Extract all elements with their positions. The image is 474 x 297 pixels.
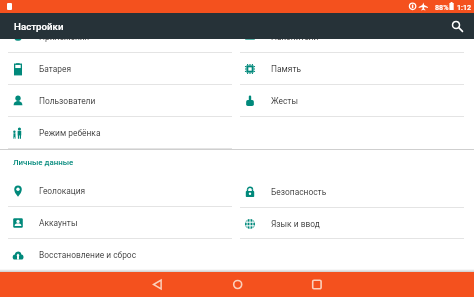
staticText: 88% xyxy=(435,3,449,11)
staticText: Язык и ввод xyxy=(271,219,320,229)
staticText: Безопасность xyxy=(271,187,327,197)
button[interactable]: Безопасность xyxy=(240,176,464,208)
button[interactable]: Восстановление и сброс xyxy=(8,239,232,269)
staticText: Накопители xyxy=(271,39,319,42)
staticText: Память xyxy=(271,64,301,74)
button[interactable]: Память xyxy=(240,53,464,85)
staticText: Приложения xyxy=(39,39,90,42)
button[interactable]: Пользователи xyxy=(8,85,232,117)
staticText: Режим ребёнка xyxy=(39,128,101,138)
button[interactable]: Back xyxy=(140,272,176,297)
staticText: 1:12 xyxy=(457,3,472,11)
staticText: Аккаунты xyxy=(39,218,78,228)
staticText: Восстановление и сброс xyxy=(39,250,137,260)
button[interactable]: Накопители xyxy=(240,39,464,53)
button[interactable]: Язык и ввод xyxy=(240,208,464,239)
staticText: Жесты xyxy=(271,96,298,106)
button[interactable]: Жесты xyxy=(240,85,464,117)
staticText: Настройки xyxy=(14,21,64,32)
staticText: Личные данные xyxy=(13,158,74,167)
button[interactable]: Search xyxy=(444,13,470,39)
button[interactable]: Режим ребёнка xyxy=(8,117,232,149)
button[interactable]: Геолокация xyxy=(8,176,232,207)
staticText: Геолокация xyxy=(39,186,86,196)
staticText: Батарея xyxy=(39,64,72,74)
button[interactable]: Аккаунты xyxy=(8,207,232,239)
button[interactable]: Приложения xyxy=(8,39,232,53)
button[interactable]: Батарея xyxy=(8,53,232,85)
staticText: Пользователи xyxy=(39,96,96,106)
button[interactable]: Recents xyxy=(299,272,335,297)
button[interactable]: Home xyxy=(220,272,256,297)
